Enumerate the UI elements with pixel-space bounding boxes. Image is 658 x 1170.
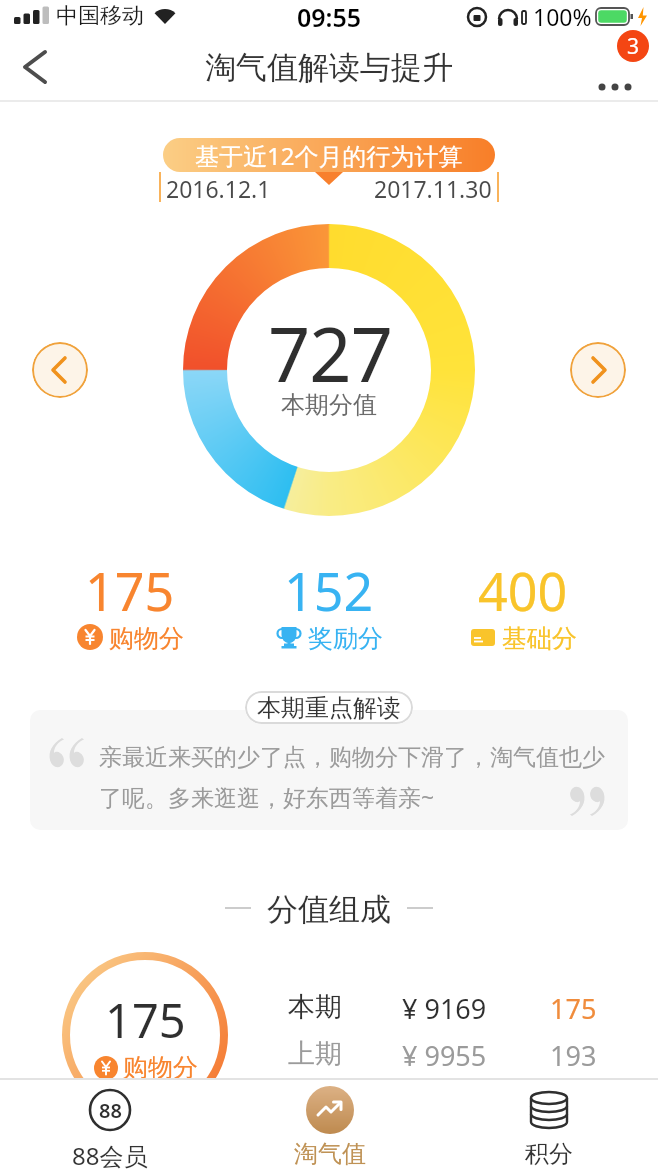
staticText: 分值组成 (267, 890, 391, 926)
staticText: 2016.12.1 (166, 173, 271, 204)
staticText: ¥ 9955 (402, 1037, 487, 1074)
button[interactable] (32, 342, 88, 398)
staticText: 本期重点解读 (257, 693, 401, 723)
button[interactable]: 88 (0, 1080, 220, 1170)
staticText: 193 (550, 1037, 597, 1074)
button[interactable]: 积分 (439, 1080, 658, 1170)
staticText: 了呢。多来逛逛，好东西等着亲~ (99, 781, 435, 812)
staticText: 购物分 (123, 1052, 198, 1083)
staticText: 09:55 (297, 0, 362, 32)
button[interactable]: 3 (590, 39, 646, 95)
staticText: 727 (268, 303, 392, 404)
staticText: 中国移动 (56, 2, 144, 30)
staticText: 购物分 (109, 623, 184, 651)
staticText: 基础分 (502, 623, 577, 651)
staticText: ¥ 9169 (402, 990, 487, 1027)
staticText: 淘气值 (294, 1139, 366, 1169)
staticText: 88会员 (72, 1139, 148, 1170)
staticText: 基于近12个月的行为计算 (195, 139, 463, 172)
staticText: 175 (105, 988, 186, 1052)
button[interactable] (10, 43, 58, 91)
staticText: 100% (533, 1, 592, 32)
staticText: 175 (550, 990, 597, 1027)
staticText: 积分 (525, 1139, 573, 1169)
staticText: 3 (627, 32, 640, 61)
staticText: 淘气值解读与提升 (205, 48, 453, 87)
staticText: 400 (478, 555, 568, 615)
button[interactable]: 淘气值 (220, 1080, 439, 1170)
button[interactable] (570, 342, 626, 398)
staticText: 88 (99, 1097, 122, 1124)
staticText: 上期 (288, 1037, 342, 1071)
staticText: 175 (85, 555, 175, 615)
staticText: 本期分值 (281, 390, 377, 420)
staticText: 2017.11.30 (374, 173, 492, 204)
staticText: 亲最近来买的少了点，购物分下滑了，淘气值也少 (99, 743, 605, 772)
staticText: 本期 (288, 990, 342, 1024)
staticText: 奖励分 (308, 623, 383, 651)
staticText: 152 (284, 555, 374, 615)
